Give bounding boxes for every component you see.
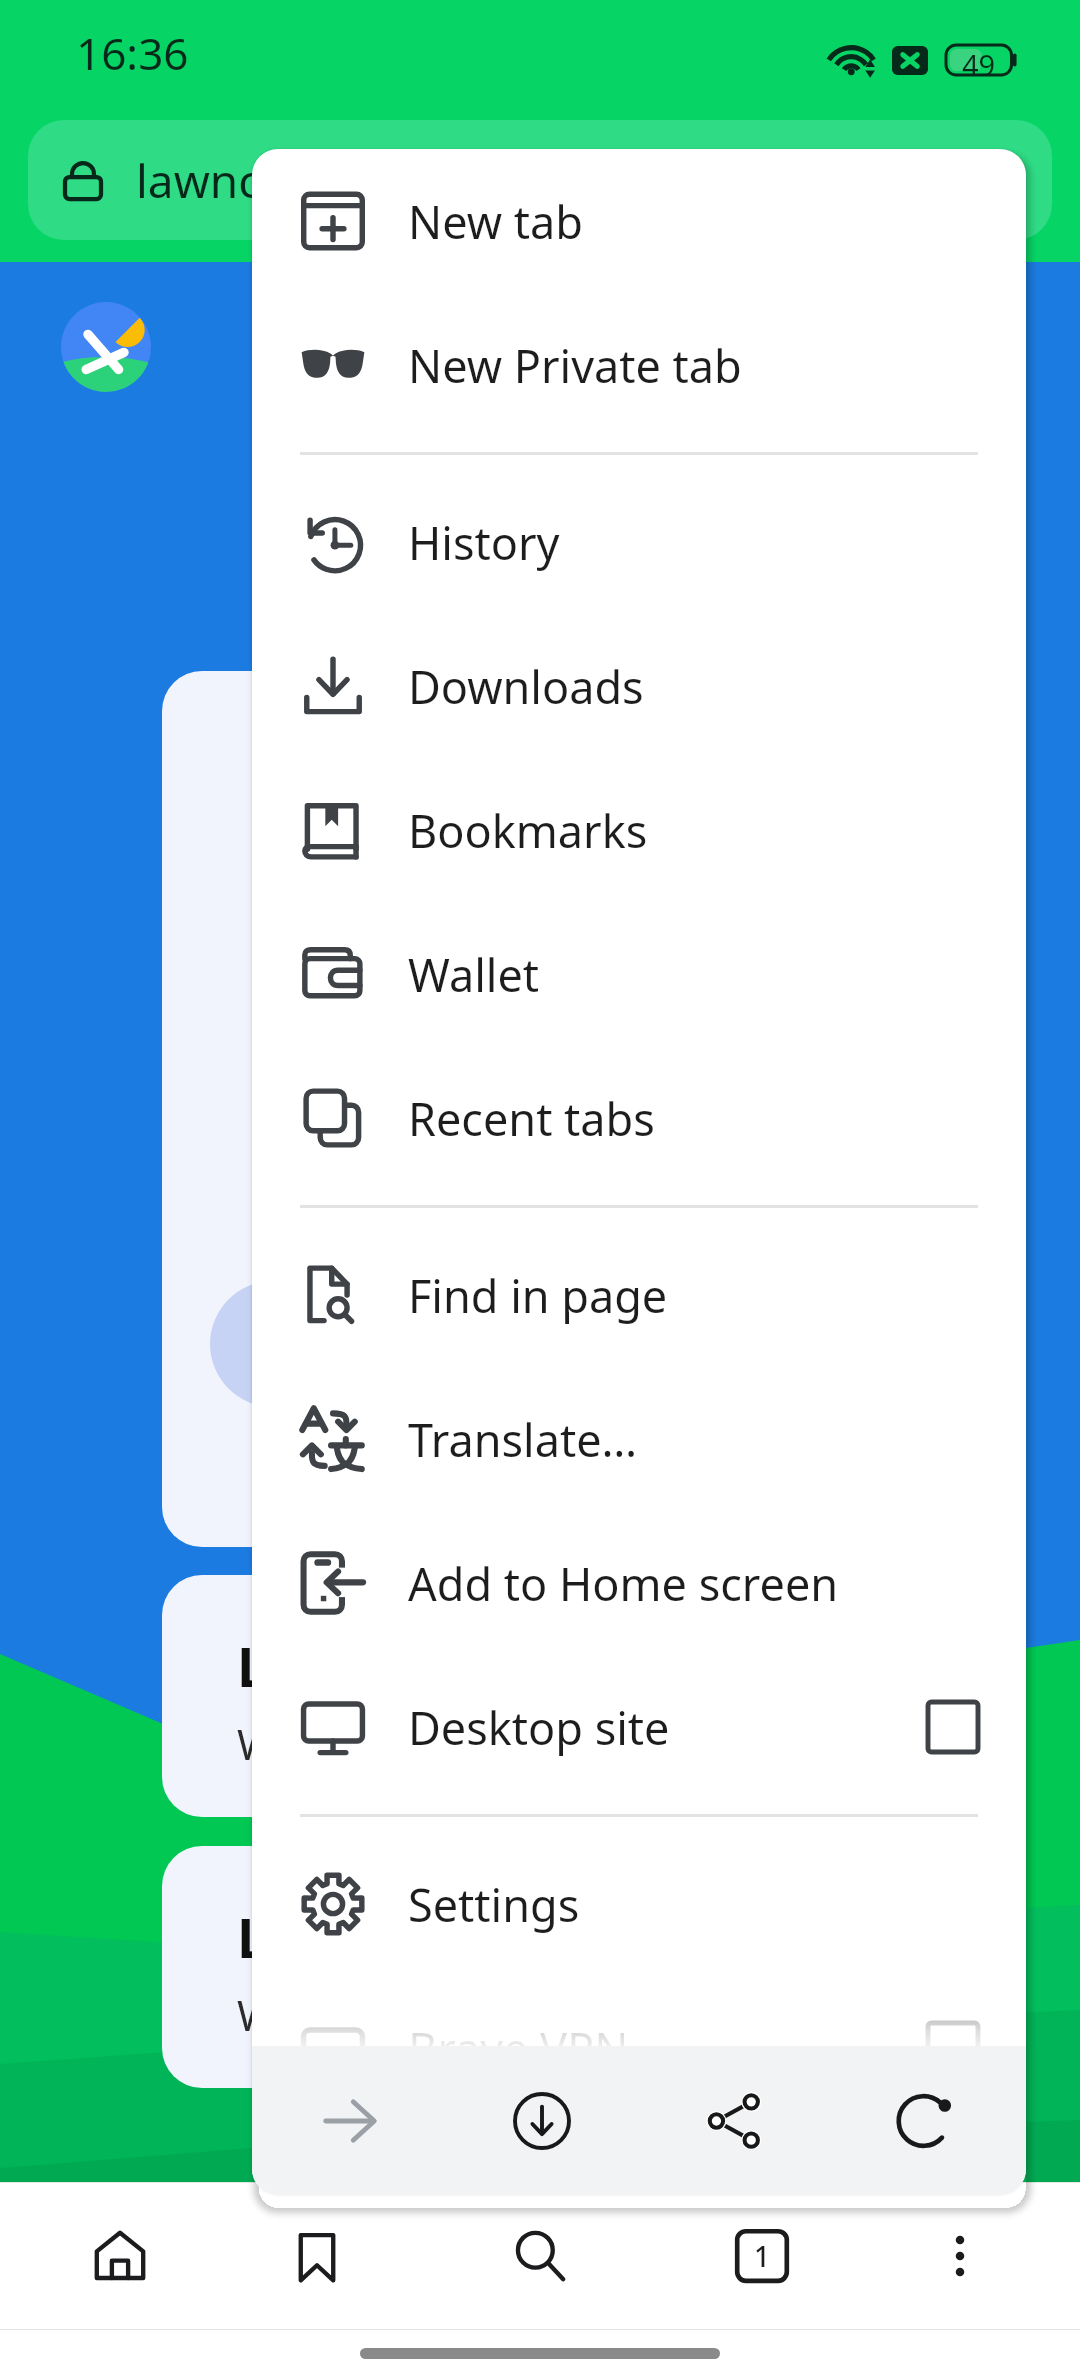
staticText: lawnchair.app	[136, 149, 433, 212]
button[interactable]: Translate…	[252, 1367, 1026, 1511]
staticText: Lawnchair	[237, 1629, 517, 1703]
staticText: Recent tabs	[408, 1088, 655, 1149]
button[interactable]: Forward	[275, 2046, 425, 2195]
button[interactable]: Downloads	[252, 614, 1026, 758]
button[interactable]: Download page	[467, 2046, 617, 2195]
button[interactable]: Find in page	[252, 1223, 1026, 1367]
staticText: Translate…	[408, 1409, 638, 1470]
staticText: New tab	[408, 191, 583, 252]
button[interactable]: New tab	[252, 149, 1026, 293]
staticText: New Private tab	[408, 335, 742, 396]
staticText: Wallet	[408, 944, 540, 1005]
staticText: Downloads	[408, 656, 644, 717]
button[interactable]: Desktop site	[252, 1655, 1026, 1799]
staticText: Desktop site	[408, 1697, 670, 1758]
button[interactable]: Search	[455, 2183, 625, 2329]
button[interactable]: More options	[875, 2183, 1045, 2329]
button[interactable]: Settings	[252, 1832, 1026, 1976]
staticText: Find in page	[408, 1265, 668, 1326]
staticText: Brave VPN	[408, 2018, 629, 2079]
staticText: 16:36	[76, 23, 189, 83]
button[interactable]: Bookmarks	[232, 2183, 402, 2329]
staticText: 1	[754, 2237, 771, 2275]
button[interactable]: Home	[35, 2183, 205, 2329]
staticText: 49	[962, 45, 996, 75]
staticText: Weather	[237, 1715, 405, 1772]
staticText: Settings	[408, 1874, 580, 1935]
staticText: Bookmarks	[408, 800, 648, 861]
button[interactable]: Bookmarks	[252, 758, 1026, 902]
staticText: Add to Home screen	[408, 1553, 839, 1614]
button[interactable]: Share	[660, 2046, 810, 2195]
button[interactable]: Brave VPN	[252, 1976, 1026, 2120]
staticText: Lawnchair	[237, 1900, 517, 1974]
button[interactable]: History	[252, 470, 1026, 614]
staticText: History	[408, 512, 560, 573]
button[interactable]: New Private tab	[252, 293, 1026, 437]
button[interactable]: Tabs	[677, 2183, 847, 2329]
button[interactable]: Reload	[851, 2046, 1001, 2195]
button[interactable]: lawnchair.app	[28, 120, 1052, 240]
staticText: Weather	[237, 1986, 405, 2043]
button[interactable]: Wallet	[252, 902, 1026, 1046]
button[interactable]: Add to Home screen	[252, 1511, 1026, 1655]
button[interactable]: Recent tabs	[252, 1046, 1026, 1190]
